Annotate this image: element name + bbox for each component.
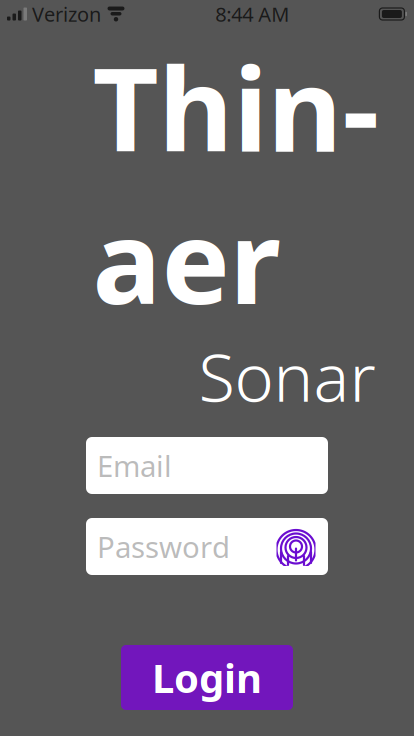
button[interactable]: Login: [121, 645, 293, 710]
button[interactable]: Password: [86, 518, 328, 575]
staticText: 8:44 AM: [215, 1, 289, 27]
staticText: Password: [97, 527, 230, 566]
staticText: Email: [97, 446, 172, 485]
button[interactable]: Email: [86, 437, 328, 494]
staticText: Login: [152, 651, 262, 704]
staticText: Verizon: [32, 1, 101, 27]
staticText: Sonar: [198, 331, 375, 420]
staticText: Thinaer: [92, 31, 379, 335]
